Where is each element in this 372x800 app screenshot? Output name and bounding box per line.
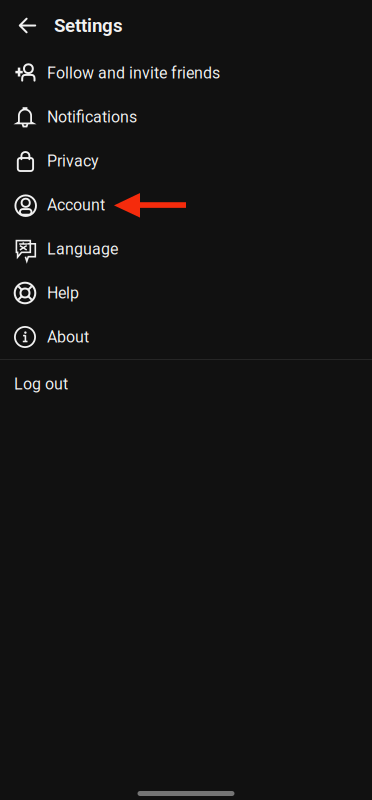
- staticText: About: [47, 328, 89, 346]
- staticText: Log out: [14, 375, 68, 393]
- staticText: Settings: [54, 15, 123, 36]
- staticText: Account: [47, 196, 105, 214]
- button[interactable]: Account: [0, 183, 372, 227]
- button[interactable]: Privacy: [0, 139, 372, 183]
- button[interactable]: Help: [0, 271, 372, 315]
- staticText: Help: [47, 284, 79, 302]
- staticText: Language: [47, 240, 118, 258]
- staticText: Follow and invite friends: [47, 64, 220, 82]
- button[interactable]: Language: [0, 227, 372, 271]
- button[interactable]: Notifications: [0, 95, 372, 139]
- button[interactable]: Follow and invite friends: [0, 51, 372, 95]
- button[interactable]: Log out: [0, 360, 372, 408]
- button[interactable]: About: [0, 315, 372, 359]
- button[interactable]: Back: [13, 6, 43, 44]
- staticText: Privacy: [47, 152, 99, 170]
- staticText: Notifications: [47, 108, 137, 126]
